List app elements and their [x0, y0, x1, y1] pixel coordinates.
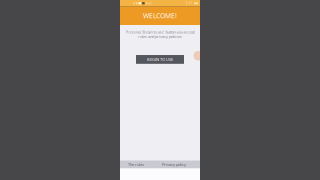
button[interactable]: The rules — [128, 162, 144, 167]
staticText: Privacy policy — [162, 162, 186, 167]
staticText: The rules — [128, 162, 144, 167]
staticText: Pressing 'Begin to use' button you accep… — [125, 29, 194, 34]
button[interactable]: BEGIN TO USE — [136, 55, 184, 64]
staticText: 9:41 — [186, 1, 193, 5]
staticText: BEGIN TO USE — [147, 57, 173, 62]
staticText: WELCOME! — [143, 11, 177, 20]
button[interactable]: Privacy policy — [162, 162, 186, 167]
staticText: rules and privacy policies — [138, 34, 182, 39]
